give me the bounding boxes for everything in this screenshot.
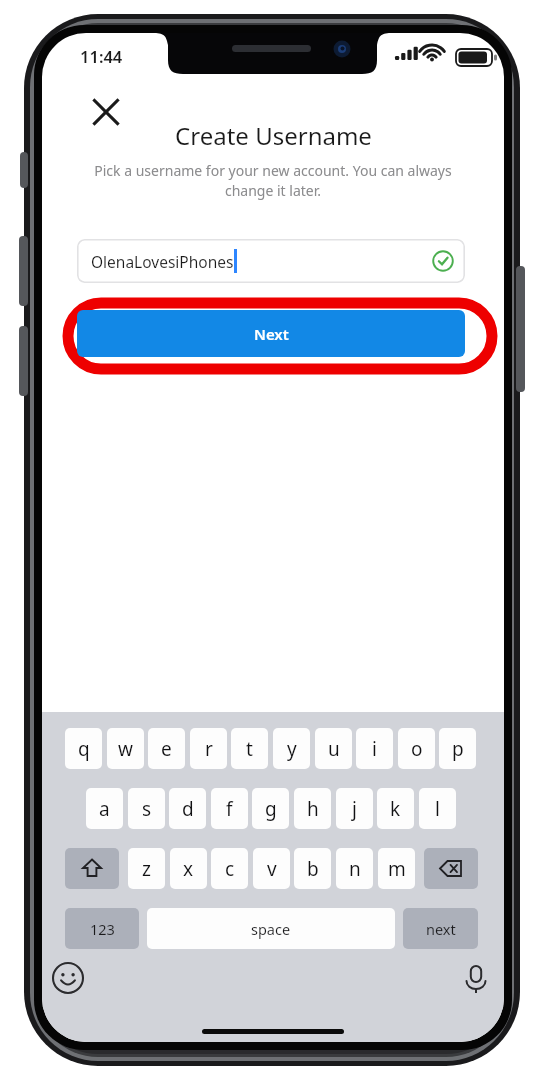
button[interactable]: h xyxy=(294,788,331,829)
staticText: q xyxy=(78,736,90,762)
staticText: e xyxy=(161,736,172,762)
button[interactable]: r xyxy=(190,728,227,769)
button[interactable]: q xyxy=(65,728,102,769)
button[interactable]: e xyxy=(148,728,185,769)
staticText: c xyxy=(225,856,235,882)
button[interactable]: x xyxy=(170,848,207,889)
staticText: x xyxy=(183,856,194,882)
button[interactable]: OlenaLovesiPhones xyxy=(77,239,465,283)
button[interactable]: next xyxy=(403,908,478,949)
button[interactable]: Shift xyxy=(65,848,119,889)
staticText: y xyxy=(287,736,297,762)
button[interactable]: d xyxy=(169,788,206,829)
button[interactable]: u xyxy=(315,728,352,769)
staticText: s xyxy=(142,796,152,822)
button[interactable]: Dictation xyxy=(458,960,494,996)
button[interactable]: Backspace xyxy=(424,848,478,889)
staticText: v xyxy=(267,856,277,882)
button[interactable]: z xyxy=(128,848,165,889)
button[interactable]: Next xyxy=(77,310,465,357)
button[interactable]: Emoji keyboard xyxy=(50,960,86,996)
staticText: l xyxy=(435,796,440,822)
staticText: g xyxy=(265,796,277,822)
staticText: Pick a username for your new account. Yo… xyxy=(72,161,474,200)
staticText: p xyxy=(452,736,464,762)
staticText: Next xyxy=(254,324,289,344)
button[interactable]: i xyxy=(356,728,393,769)
button[interactable]: y xyxy=(273,728,310,769)
staticText: t xyxy=(246,736,253,762)
staticText: f xyxy=(226,796,233,822)
staticText: h xyxy=(307,796,319,822)
button[interactable]: t xyxy=(231,728,268,769)
staticText: z xyxy=(142,856,151,882)
button[interactable]: s xyxy=(128,788,165,829)
staticText: i xyxy=(372,736,377,762)
button[interactable]: a xyxy=(86,788,123,829)
button[interactable]: v xyxy=(253,848,290,889)
staticText: j xyxy=(352,796,357,822)
staticText: m xyxy=(388,856,406,882)
staticText: a xyxy=(99,796,110,822)
staticText: r xyxy=(205,736,213,762)
staticText: u xyxy=(328,736,340,762)
staticText: b xyxy=(307,856,319,882)
staticText: n xyxy=(349,856,361,882)
button[interactable]: o xyxy=(398,728,435,769)
button[interactable]: b xyxy=(294,848,331,889)
button[interactable]: l xyxy=(419,788,456,829)
button[interactable]: c xyxy=(211,848,248,889)
staticText: space xyxy=(251,919,291,939)
button[interactable]: space xyxy=(147,908,395,949)
button[interactable]: m xyxy=(378,848,415,889)
staticText: 11:44 xyxy=(80,45,123,67)
button[interactable]: w xyxy=(107,728,144,769)
staticText: o xyxy=(411,736,423,762)
button[interactable]: Close xyxy=(84,90,128,134)
button[interactable]: p xyxy=(439,728,476,769)
button[interactable]: n xyxy=(336,848,373,889)
staticText: 123 xyxy=(90,919,115,939)
staticText: next xyxy=(426,919,456,939)
button[interactable]: g xyxy=(252,788,289,829)
staticText: Create Username xyxy=(175,119,372,152)
button[interactable]: j xyxy=(336,788,373,829)
staticText: d xyxy=(182,796,194,822)
staticText: OlenaLovesiPhones xyxy=(91,251,234,272)
button[interactable]: f xyxy=(211,788,248,829)
button[interactable]: 123 xyxy=(65,908,139,949)
staticText: w xyxy=(118,736,133,762)
staticText: k xyxy=(390,796,401,822)
button[interactable]: k xyxy=(377,788,414,829)
